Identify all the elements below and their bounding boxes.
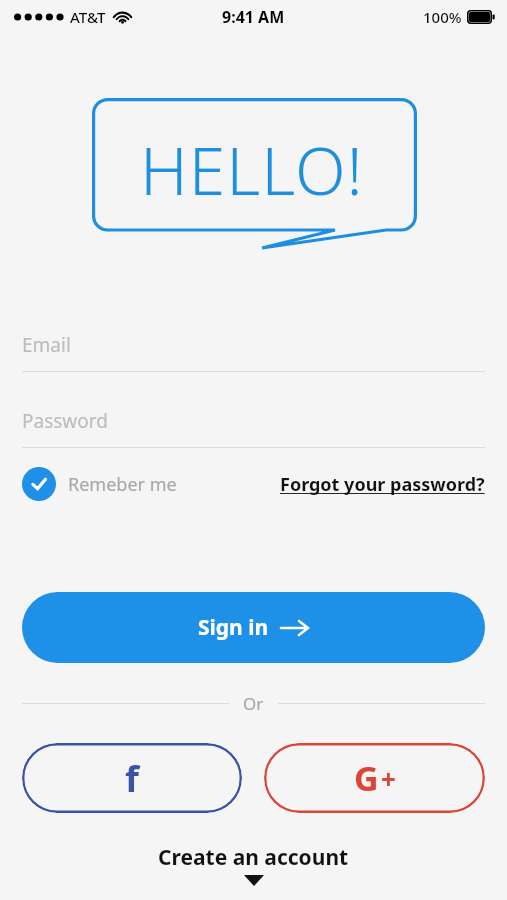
button[interactable]: Forgot your password? — [280, 472, 485, 497]
staticText: Password — [22, 408, 108, 434]
staticText: Remeber me — [68, 472, 177, 497]
staticText: AT&T — [70, 7, 106, 27]
button[interactable]: Sign in with Google Plus — [264, 743, 485, 813]
staticText: HELLO! — [140, 124, 364, 214]
staticText: f — [125, 754, 139, 803]
staticText: 9:41 AM — [222, 6, 285, 28]
staticText: G — [354, 755, 379, 801]
button[interactable]: Remeber me — [22, 467, 177, 501]
staticText: Or — [243, 692, 264, 715]
button[interactable]: Create an account — [0, 843, 507, 886]
staticText: 100% — [423, 7, 462, 27]
staticText: Sign in — [198, 613, 269, 642]
staticText: Create an account — [158, 843, 349, 872]
button[interactable]: Password — [22, 394, 485, 447]
staticText: + — [381, 761, 396, 796]
staticText: Email — [22, 332, 71, 358]
button[interactable]: Sign in — [22, 592, 485, 663]
button[interactable]: Sign in with Facebook — [22, 743, 242, 813]
staticText: Forgot your password? — [280, 472, 485, 497]
button[interactable]: Email — [22, 318, 485, 371]
